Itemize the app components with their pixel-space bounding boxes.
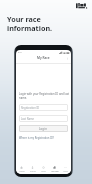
staticText: Your race information. <box>7 14 53 33</box>
staticText: My Race <box>51 170 59 173</box>
button[interactable]: Brand logo <box>76 3 87 9</box>
staticText: My Race <box>37 56 50 60</box>
staticText: Login with your Registration ID and last… <box>19 92 69 99</box>
button[interactable]: Events <box>27 164 38 174</box>
button[interactable]: More options <box>66 57 69 60</box>
button[interactable]: Last Name <box>19 115 68 122</box>
staticText: 9:41 <box>18 51 22 54</box>
staticText: Log in <box>39 127 48 131</box>
button[interactable]: Track <box>38 164 49 174</box>
staticText: Last Name <box>21 117 34 121</box>
staticText: Registration ID <box>21 106 40 110</box>
staticText: More <box>63 170 68 173</box>
button[interactable]: Home <box>16 164 27 174</box>
staticText: Track <box>41 170 46 173</box>
staticText: Events <box>30 170 36 173</box>
button[interactable]: Registration ID <box>19 104 68 111</box>
button[interactable]: Where is my Registration ID? <box>19 136 54 140</box>
button[interactable]: More <box>60 164 71 174</box>
staticText: Home <box>19 170 25 173</box>
button[interactable]: My Race <box>49 164 60 174</box>
button[interactable]: Log in <box>19 125 68 132</box>
